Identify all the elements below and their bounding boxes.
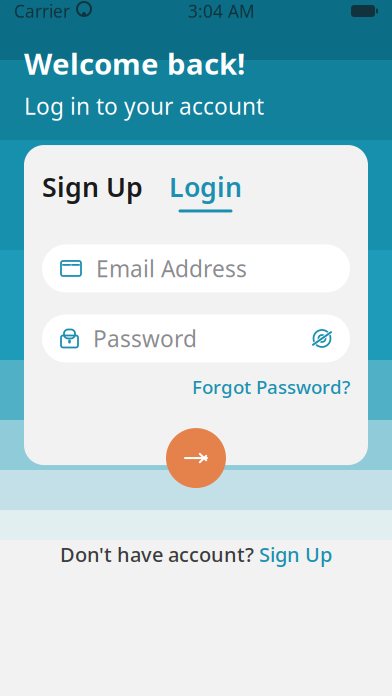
staticText: Login [169, 169, 242, 204]
button[interactable]: Forgot Password? [192, 374, 350, 399]
button[interactable]: Sign Up [259, 541, 332, 568]
staticText: Log in to your account [24, 91, 264, 121]
staticText: Sign Up [259, 541, 332, 568]
staticText: Forgot Password? [192, 374, 350, 399]
button[interactable]: Sign Up [42, 169, 143, 212]
staticText: Email Address [96, 253, 247, 283]
button[interactable]: Login [169, 169, 242, 212]
staticText: Password [93, 323, 197, 353]
staticText: Welcome back! [24, 44, 245, 83]
staticText: Don't have account? [60, 541, 254, 568]
staticText: Sign Up [42, 169, 143, 204]
button[interactable]: Show password [310, 327, 334, 349]
staticText: 3:04 AM [188, 0, 255, 22]
button[interactable]: Continue [166, 428, 226, 488]
staticText: Carrier [14, 0, 70, 22]
